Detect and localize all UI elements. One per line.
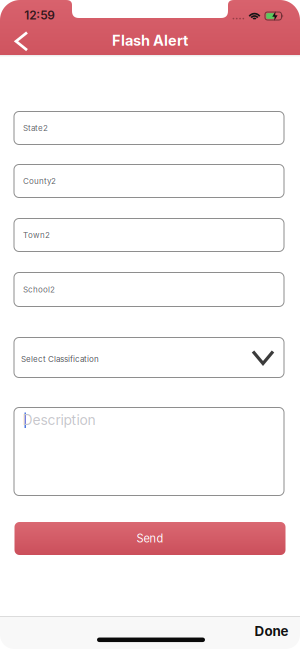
staticText: School2 [23, 285, 55, 294]
staticText: Send [136, 532, 163, 545]
button[interactable]: State2 [14, 111, 284, 144]
button[interactable]: Town2 [14, 218, 284, 251]
staticText: Done [254, 623, 288, 639]
staticText: State2 [23, 123, 48, 133]
button[interactable]: Back [2, 21, 40, 61]
staticText: County2 [23, 176, 56, 186]
staticText: Town2 [23, 230, 50, 240]
button[interactable]: Send [14, 522, 285, 555]
button[interactable]: Description [14, 407, 284, 495]
button[interactable]: Select Classification [14, 337, 284, 377]
button[interactable]: County2 [14, 164, 284, 197]
staticText: 12:59 [24, 8, 55, 22]
button[interactable]: Done [245, 619, 297, 643]
staticText: Select Classification [21, 354, 99, 364]
staticText: Flash Alert [112, 32, 188, 49]
staticText: Description [22, 411, 95, 428]
button[interactable]: School2 [14, 272, 284, 306]
